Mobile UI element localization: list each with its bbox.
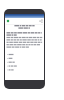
button[interactable]: App icon	[6, 19, 10, 23]
button[interactable]: Share	[39, 19, 43, 23]
